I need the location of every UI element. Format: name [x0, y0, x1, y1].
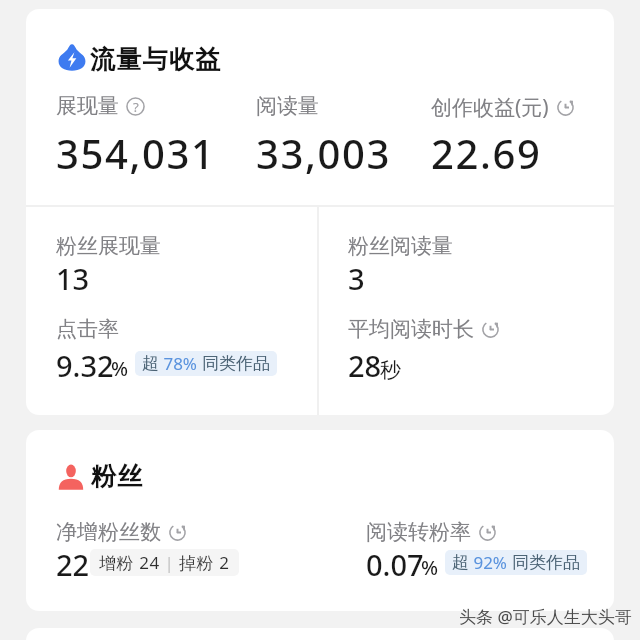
- staticText: 粉丝: [91, 461, 144, 492]
- staticText: 增粉 24: [99, 551, 160, 574]
- staticText: |: [160, 551, 179, 574]
- staticText: 13: [56, 259, 90, 298]
- staticText: 超: [142, 353, 159, 374]
- staticText: 3: [348, 259, 365, 298]
- staticText: ?: [133, 98, 139, 116]
- staticText: 22.69: [431, 126, 542, 180]
- staticText: 同类作品: [202, 353, 270, 374]
- staticText: 创作收益(元): [431, 93, 549, 122]
- staticText: 9.32: [56, 346, 114, 385]
- staticText: 平均阅读时长: [348, 316, 474, 342]
- staticText: 点击率: [56, 316, 119, 342]
- staticText: 粉丝展现量: [56, 233, 161, 259]
- staticText: 超: [452, 552, 469, 573]
- staticText: 0.07: [366, 545, 424, 584]
- staticText: 掉粉 2: [179, 551, 230, 574]
- staticText: 354,031: [56, 126, 216, 180]
- staticText: 流量与收益: [90, 44, 222, 75]
- staticText: 展现量: [56, 93, 119, 119]
- staticText: 22: [56, 545, 90, 584]
- button[interactable]: 超: [445, 550, 587, 575]
- staticText: 同类作品: [512, 552, 580, 573]
- staticText: %: [421, 554, 439, 581]
- staticText: 33,003: [256, 126, 391, 180]
- staticText: 阅读量: [256, 93, 319, 119]
- staticText: 秒: [380, 357, 401, 383]
- staticText: 阅读转粉率: [366, 519, 471, 545]
- staticText: %: [111, 355, 129, 382]
- staticText: 78%: [159, 352, 202, 375]
- button[interactable]: 增粉 24: [90, 549, 239, 576]
- staticText: 92%: [469, 551, 512, 574]
- button[interactable]: 超: [135, 351, 277, 376]
- button[interactable]: 粉丝: [54, 458, 194, 496]
- staticText: 头条 @可乐人生大头哥: [459, 605, 632, 628]
- button[interactable]: 流量与收益: [54, 37, 254, 75]
- staticText: 28: [348, 346, 382, 385]
- staticText: 粉丝阅读量: [348, 233, 453, 259]
- staticText: 净增粉丝数: [56, 519, 161, 545]
